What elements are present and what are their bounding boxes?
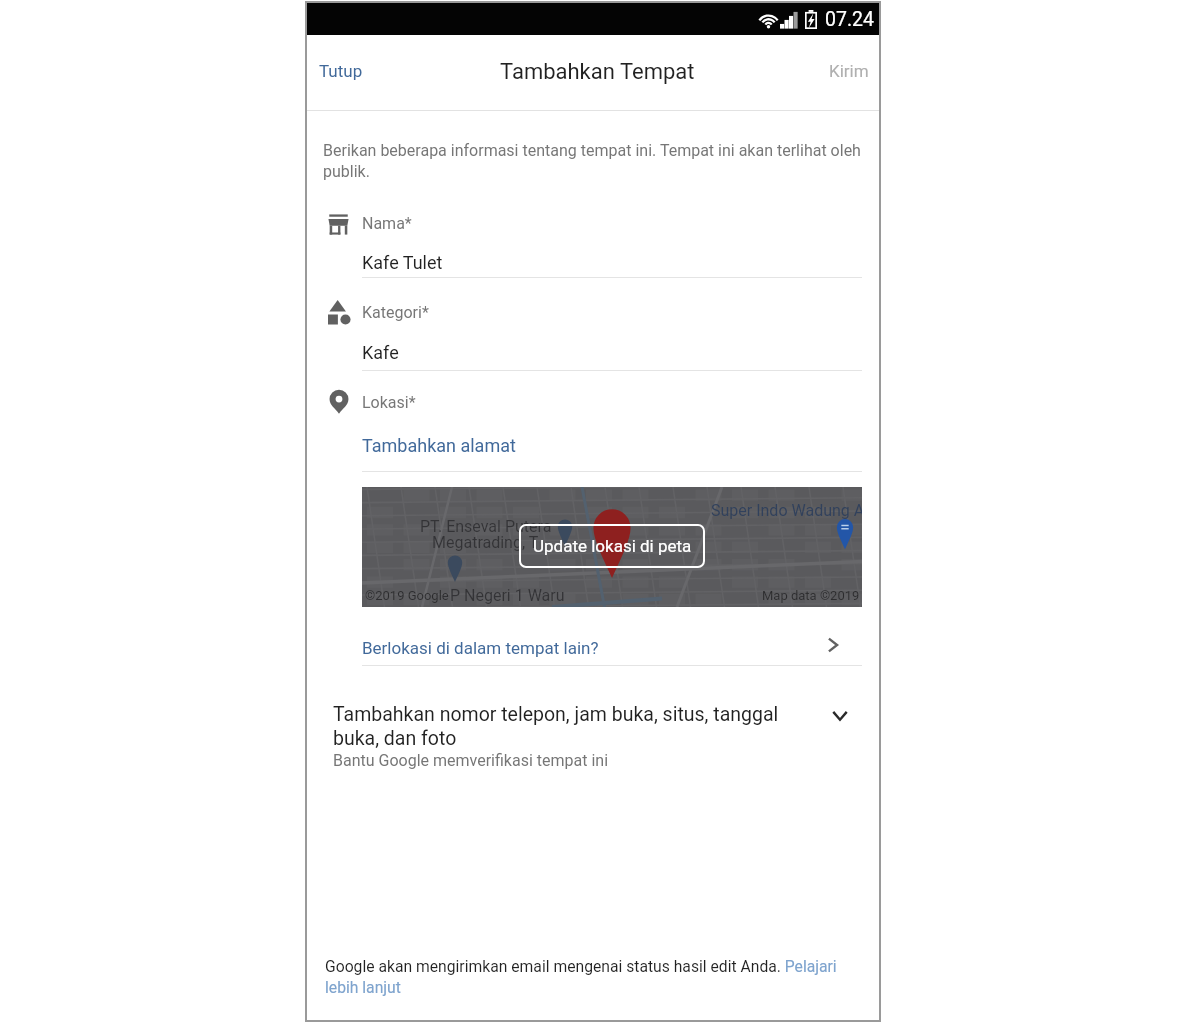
staticText: P Negeri 1 Waru xyxy=(450,586,565,605)
staticText: Tutup xyxy=(319,61,363,81)
button[interactable]: Tutup xyxy=(314,55,368,87)
staticText: PT. Enseval Putera xyxy=(420,517,552,536)
button[interactable]: Nama* xyxy=(323,208,862,279)
staticText: Google akan mengirimkan email mengenai s… xyxy=(325,957,845,996)
staticText: Tambahkan alamat xyxy=(362,435,516,456)
button[interactable]: Kirim xyxy=(824,55,874,87)
staticText: Berikan beberapa informasi tentang tempa… xyxy=(323,141,865,181)
button[interactable]: Lokasi* xyxy=(323,384,862,473)
button[interactable]: Kategori* xyxy=(323,294,862,372)
other: Luaskan xyxy=(832,710,848,721)
staticText: Kategori* xyxy=(362,303,429,322)
button[interactable]: Berlokasi di dalam tempat lain? xyxy=(362,623,862,665)
button[interactable]: Tambahkan nomor telepon, jam buka, situs… xyxy=(328,698,868,778)
staticText: Megatrading, T xyxy=(432,533,539,552)
button[interactable]: PT. Enseval Putera xyxy=(362,487,862,607)
staticText: Kafe xyxy=(362,342,399,363)
staticText: ©2019 Google xyxy=(365,588,449,603)
staticText: Kirim xyxy=(829,61,869,81)
staticText: Tambahkan nomor telepon, jam buka, situs… xyxy=(333,703,803,750)
staticText: Kafe Tulet xyxy=(362,252,443,273)
staticText: Bantu Google memverifikasi tempat ini xyxy=(333,751,609,770)
button[interactable]: Google akan mengirimkan email mengenai s… xyxy=(325,957,845,996)
staticText: Nama* xyxy=(362,214,412,233)
staticText: Super Indo Wadung A xyxy=(711,501,862,520)
staticText: Update lokasi di peta xyxy=(533,536,692,556)
staticText: Lokasi* xyxy=(362,393,416,412)
staticText: Tambahkan Tempat xyxy=(500,59,695,85)
other: Buka xyxy=(827,637,839,653)
staticText: 07.24 xyxy=(825,8,874,31)
staticText: Map data ©2019 xyxy=(762,588,860,603)
staticText: Berlokasi di dalam tempat lain? xyxy=(362,638,599,658)
